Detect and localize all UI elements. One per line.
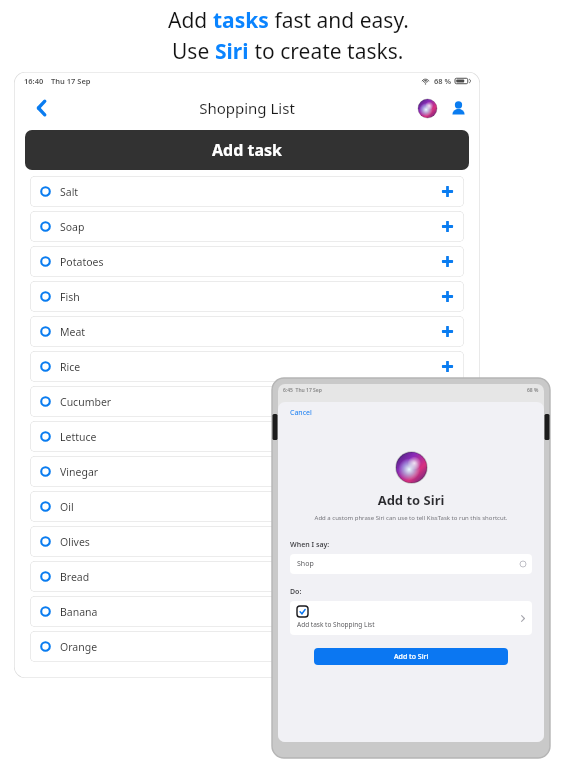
staticText: Add task [212,139,282,161]
button[interactable]: Olives [30,526,464,557]
staticText: Add to Siri [394,652,429,662]
staticText: Add [168,6,213,35]
staticText: 16:40 [24,76,44,86]
staticText: Rice [60,360,81,374]
button[interactable]: Orange [30,631,464,662]
staticText: fast and easy. [269,6,409,35]
staticText: Add to Siri [278,491,544,509]
staticText: Vinegar [60,465,99,479]
button[interactable]: Siri [415,96,439,120]
button[interactable]: Meat [30,316,464,347]
button[interactable]: Back [28,95,54,121]
button[interactable]: Vinegar [30,456,464,487]
staticText: Cancel [290,408,312,418]
button[interactable]: Rice [30,351,464,382]
button[interactable]: Fish [30,281,464,312]
button[interactable]: Bread [30,561,464,592]
button[interactable]: Soap [30,211,464,242]
staticText: 68 % [527,387,539,394]
staticText: When I say: [290,540,330,550]
staticText: Add a custom phrase Siri can use to tell… [288,514,534,522]
staticText: Do: [290,587,302,597]
staticText: Lettuce [60,430,97,444]
staticText: Oil [60,500,74,514]
button[interactable]: Potatoes [30,246,464,277]
staticText: Cucumber [60,395,112,409]
staticText: Use [172,37,215,66]
staticText: 6:45 Thu 17 Sep [283,387,322,394]
staticText: Salt [60,185,79,199]
staticText: Soap [60,220,85,234]
staticText: Orange [60,640,98,654]
staticText: Add task to Shopping List [297,620,375,629]
button[interactable]: Shop [290,554,532,574]
staticText: Shopping List [199,98,295,118]
staticText: Olives [60,535,90,549]
staticText: Meat [60,325,86,339]
button[interactable]: Oil [30,491,464,522]
staticText: Siri [215,37,249,66]
button[interactable]: Cancel [290,408,312,418]
staticText: Banana [60,605,98,619]
button[interactable]: Lettuce [30,421,464,452]
button[interactable]: Add task to Shopping List [290,601,532,635]
button[interactable]: Add task [25,130,469,170]
staticText: 68 % [434,76,452,86]
button[interactable]: Salt [30,176,464,207]
staticText: Fish [60,290,80,304]
staticText: to create tasks. [249,37,404,66]
staticText: Potatoes [60,255,104,269]
button[interactable]: Profile [446,96,470,120]
staticText: Thu 17 Sep [51,76,91,86]
button[interactable]: Banana [30,596,464,627]
button[interactable]: Cucumber [30,386,464,417]
staticText: Bread [60,570,90,584]
button[interactable]: Add to Siri [314,648,508,665]
staticText: Shop [297,559,314,569]
staticText: tasks [213,6,269,35]
